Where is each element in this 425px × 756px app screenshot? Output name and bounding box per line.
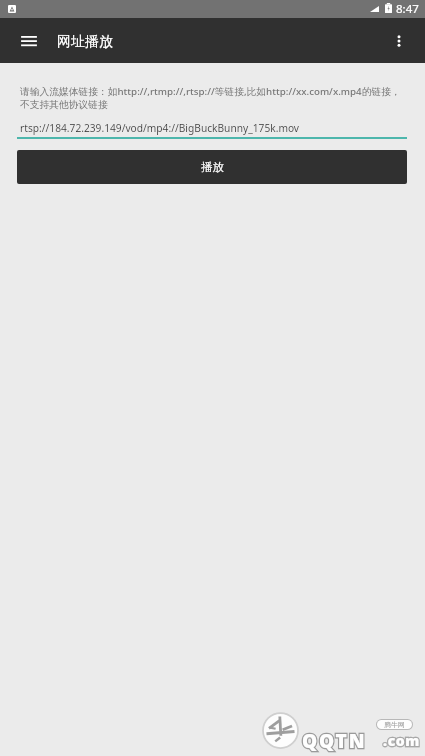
staticText: 播放 (201, 160, 224, 174)
staticText: rtsp://184.72.239.149/vod/mp4://BigBuckB… (20, 121, 300, 135)
staticText: 网址播放 (57, 33, 113, 51)
button[interactable]: More options (387, 18, 425, 63)
button[interactable]: Menu (5, 18, 53, 63)
staticText: 请输入流媒体链接：如http://,rtmp://,rtsp://等链接,比如h… (20, 85, 408, 111)
staticText: QQTN (302, 728, 367, 754)
staticText: .com (383, 731, 420, 750)
button[interactable]: 播放 (17, 150, 407, 184)
staticText: .com (383, 731, 420, 750)
button[interactable]: rtsp://184.72.239.149/vod/mp4://BigBuckB… (17, 113, 407, 139)
staticText: QQTN (302, 728, 367, 754)
staticText: 腾牛网 (384, 720, 405, 729)
staticText: 8:47 (396, 1, 419, 17)
